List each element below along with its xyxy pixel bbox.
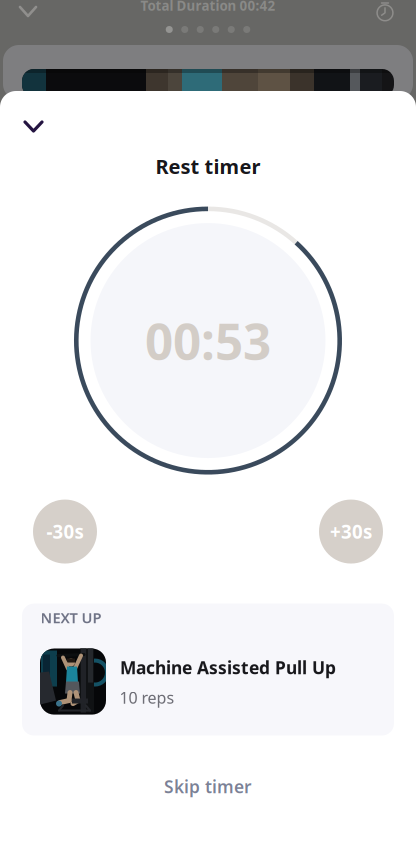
staticText: Rest timer [155, 153, 260, 180]
staticText: NEXT UP [40, 608, 101, 627]
button[interactable]: Close rest timer [11, 108, 56, 145]
staticText: Machine Assisted Pull Up [120, 656, 336, 679]
staticText: +30s [330, 519, 372, 544]
staticText: Skip timer [164, 775, 252, 798]
button[interactable]: -30s [33, 500, 97, 564]
staticText: 00:53 [145, 308, 271, 373]
staticText: 10 reps [119, 687, 174, 708]
staticText: -30s [46, 519, 83, 544]
staticText: Total Duration 00:42 [140, 0, 275, 14]
button[interactable]: +30s [319, 500, 383, 564]
button[interactable]: Skip timer [0, 761, 416, 812]
button[interactable]: NEXT UP [0, 604, 416, 736]
